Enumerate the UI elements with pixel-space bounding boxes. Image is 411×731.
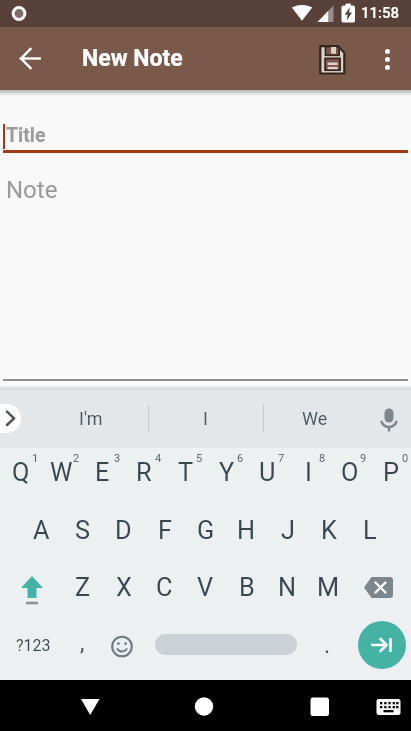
staticText: , [80, 630, 85, 656]
staticText: D [115, 516, 132, 546]
button[interactable]: F [144, 504, 185, 558]
staticText: 11:58 [361, 4, 400, 22]
staticText: L [363, 516, 377, 546]
button[interactable] [364, 34, 411, 82]
button[interactable]: Q [0, 446, 41, 500]
staticText: Title [6, 124, 46, 147]
staticText: 5 [196, 452, 203, 465]
button[interactable]: We [272, 403, 357, 434]
button[interactable]: I [163, 403, 248, 434]
staticText: Y [219, 458, 235, 488]
staticText: 3 [114, 452, 121, 465]
staticText: A [33, 516, 50, 546]
staticText: Note [6, 176, 58, 202]
staticText: B [239, 573, 255, 603]
button[interactable]: L [349, 504, 390, 558]
button[interactable]: . [307, 630, 347, 660]
staticText: We [302, 408, 328, 429]
staticText: 7 [278, 452, 285, 465]
staticText: G [197, 516, 215, 546]
button[interactable]: H [226, 504, 267, 558]
button[interactable]: O [329, 446, 370, 500]
staticText: P [383, 458, 399, 488]
button[interactable]: A [21, 504, 62, 558]
button[interactable] [7, 34, 55, 82]
button[interactable]: G [185, 504, 226, 558]
staticText: R [136, 458, 152, 488]
staticText: X [116, 573, 132, 603]
staticText: O [341, 458, 359, 488]
button[interactable]: T [165, 446, 206, 500]
staticText: Q [12, 458, 30, 488]
staticText: K [321, 516, 337, 546]
staticText: ?123 [16, 636, 51, 655]
staticText: N [278, 573, 297, 603]
staticText: 0 [402, 452, 409, 465]
button[interactable]: B [226, 561, 267, 615]
button[interactable] [308, 34, 356, 82]
button[interactable] [66, 682, 114, 730]
button[interactable]: W [41, 446, 82, 500]
staticText: I [305, 458, 312, 488]
button[interactable]: S [62, 504, 103, 558]
button[interactable] [155, 634, 297, 655]
button[interactable] [181, 682, 229, 730]
staticText: S [75, 516, 91, 546]
button[interactable]: I'm [33, 403, 149, 434]
button[interactable] [8, 566, 56, 610]
staticText: I'm [79, 408, 103, 429]
staticText: 1 [32, 452, 39, 465]
button[interactable]: R [123, 446, 164, 500]
button[interactable]: , [62, 628, 102, 658]
button[interactable]: C [144, 561, 185, 615]
button[interactable]: Y [206, 446, 247, 500]
staticText: H [237, 516, 256, 546]
button[interactable] [355, 566, 403, 610]
button[interactable]: E [82, 446, 123, 500]
button[interactable] [370, 400, 408, 438]
button[interactable] [0, 404, 21, 433]
button[interactable]: U [247, 446, 288, 500]
staticText: Z [75, 573, 91, 603]
staticText: C [156, 573, 173, 603]
staticText: W [50, 458, 73, 488]
button[interactable]: V [185, 561, 226, 615]
staticText: V [197, 573, 214, 603]
staticText: U [259, 458, 276, 488]
button[interactable]: X [103, 561, 144, 615]
button[interactable] [296, 682, 344, 730]
staticText: F [158, 516, 172, 546]
staticText: J [281, 516, 295, 546]
staticText: E [95, 458, 110, 488]
staticText: 4 [155, 452, 162, 465]
button[interactable]: N [267, 561, 308, 615]
staticText: I [203, 408, 208, 429]
button[interactable]: P [370, 446, 411, 500]
button[interactable] [102, 626, 142, 666]
button[interactable] [358, 621, 406, 669]
button[interactable] [365, 682, 411, 730]
staticText: New Note [82, 45, 183, 72]
button[interactable]: I [288, 446, 329, 500]
button[interactable]: ?123 [10, 631, 56, 659]
staticText: 8 [319, 452, 326, 465]
staticText: M [317, 573, 340, 603]
button[interactable]: M [308, 561, 349, 615]
staticText: 2 [73, 452, 80, 465]
staticText: 9 [360, 452, 367, 465]
staticText: . [324, 632, 331, 659]
button[interactable]: Z [62, 561, 103, 615]
button[interactable]: J [267, 504, 308, 558]
staticText: 6 [237, 452, 244, 465]
staticText: T [178, 458, 194, 488]
button[interactable]: D [103, 504, 144, 558]
button[interactable]: K [308, 504, 349, 558]
